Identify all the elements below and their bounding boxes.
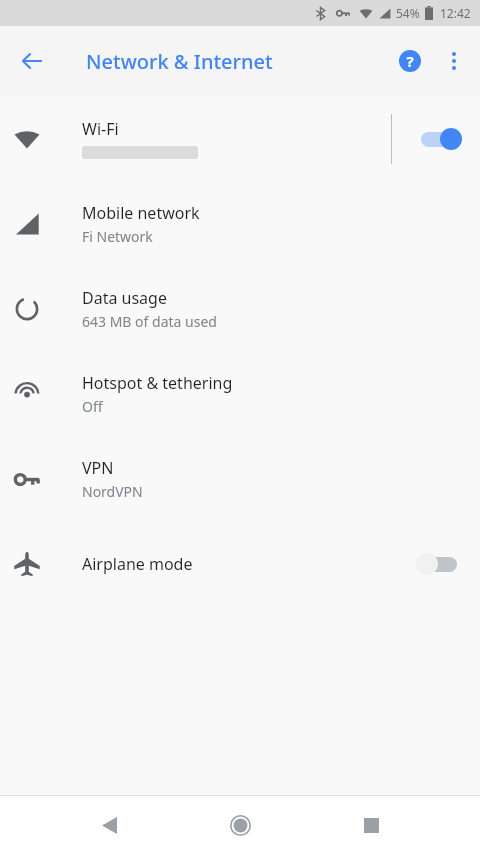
button[interactable]: Airplane mode (0, 521, 480, 606)
staticText: 643 MB of data used (82, 312, 217, 331)
button[interactable]: Toggle off (416, 551, 462, 577)
staticText: Fi Network (82, 227, 153, 246)
button[interactable]: More options (432, 39, 476, 83)
staticText: Hotspot & tethering (82, 372, 233, 394)
button[interactable]: Home (216, 801, 264, 849)
staticText: Airplane mode (82, 553, 193, 575)
button[interactable]: Hotspot & tethering (0, 351, 480, 436)
button[interactable]: VPN (0, 436, 480, 521)
button[interactable]: Help (388, 39, 432, 83)
staticText: VPN (82, 457, 114, 479)
button[interactable]: Mobile network (0, 181, 480, 266)
staticText: 12:42 (440, 5, 471, 21)
staticText: NordVPN (82, 482, 143, 501)
button[interactable]: Wi-Fi (0, 96, 480, 181)
staticText: 54% (396, 5, 420, 21)
staticText: Mobile network (82, 202, 200, 224)
staticText: Off (82, 397, 103, 416)
button[interactable]: Recent apps (347, 801, 395, 849)
staticText: Wi-Fi (82, 118, 119, 140)
staticText: Data usage (82, 287, 167, 309)
button[interactable]: Data usage (0, 266, 480, 351)
staticText: ? (406, 51, 414, 71)
button[interactable]: Toggle on (416, 126, 462, 152)
staticText: Network & Internet (86, 48, 273, 75)
button[interactable]: Back (8, 37, 56, 85)
button[interactable]: Back (85, 801, 133, 849)
